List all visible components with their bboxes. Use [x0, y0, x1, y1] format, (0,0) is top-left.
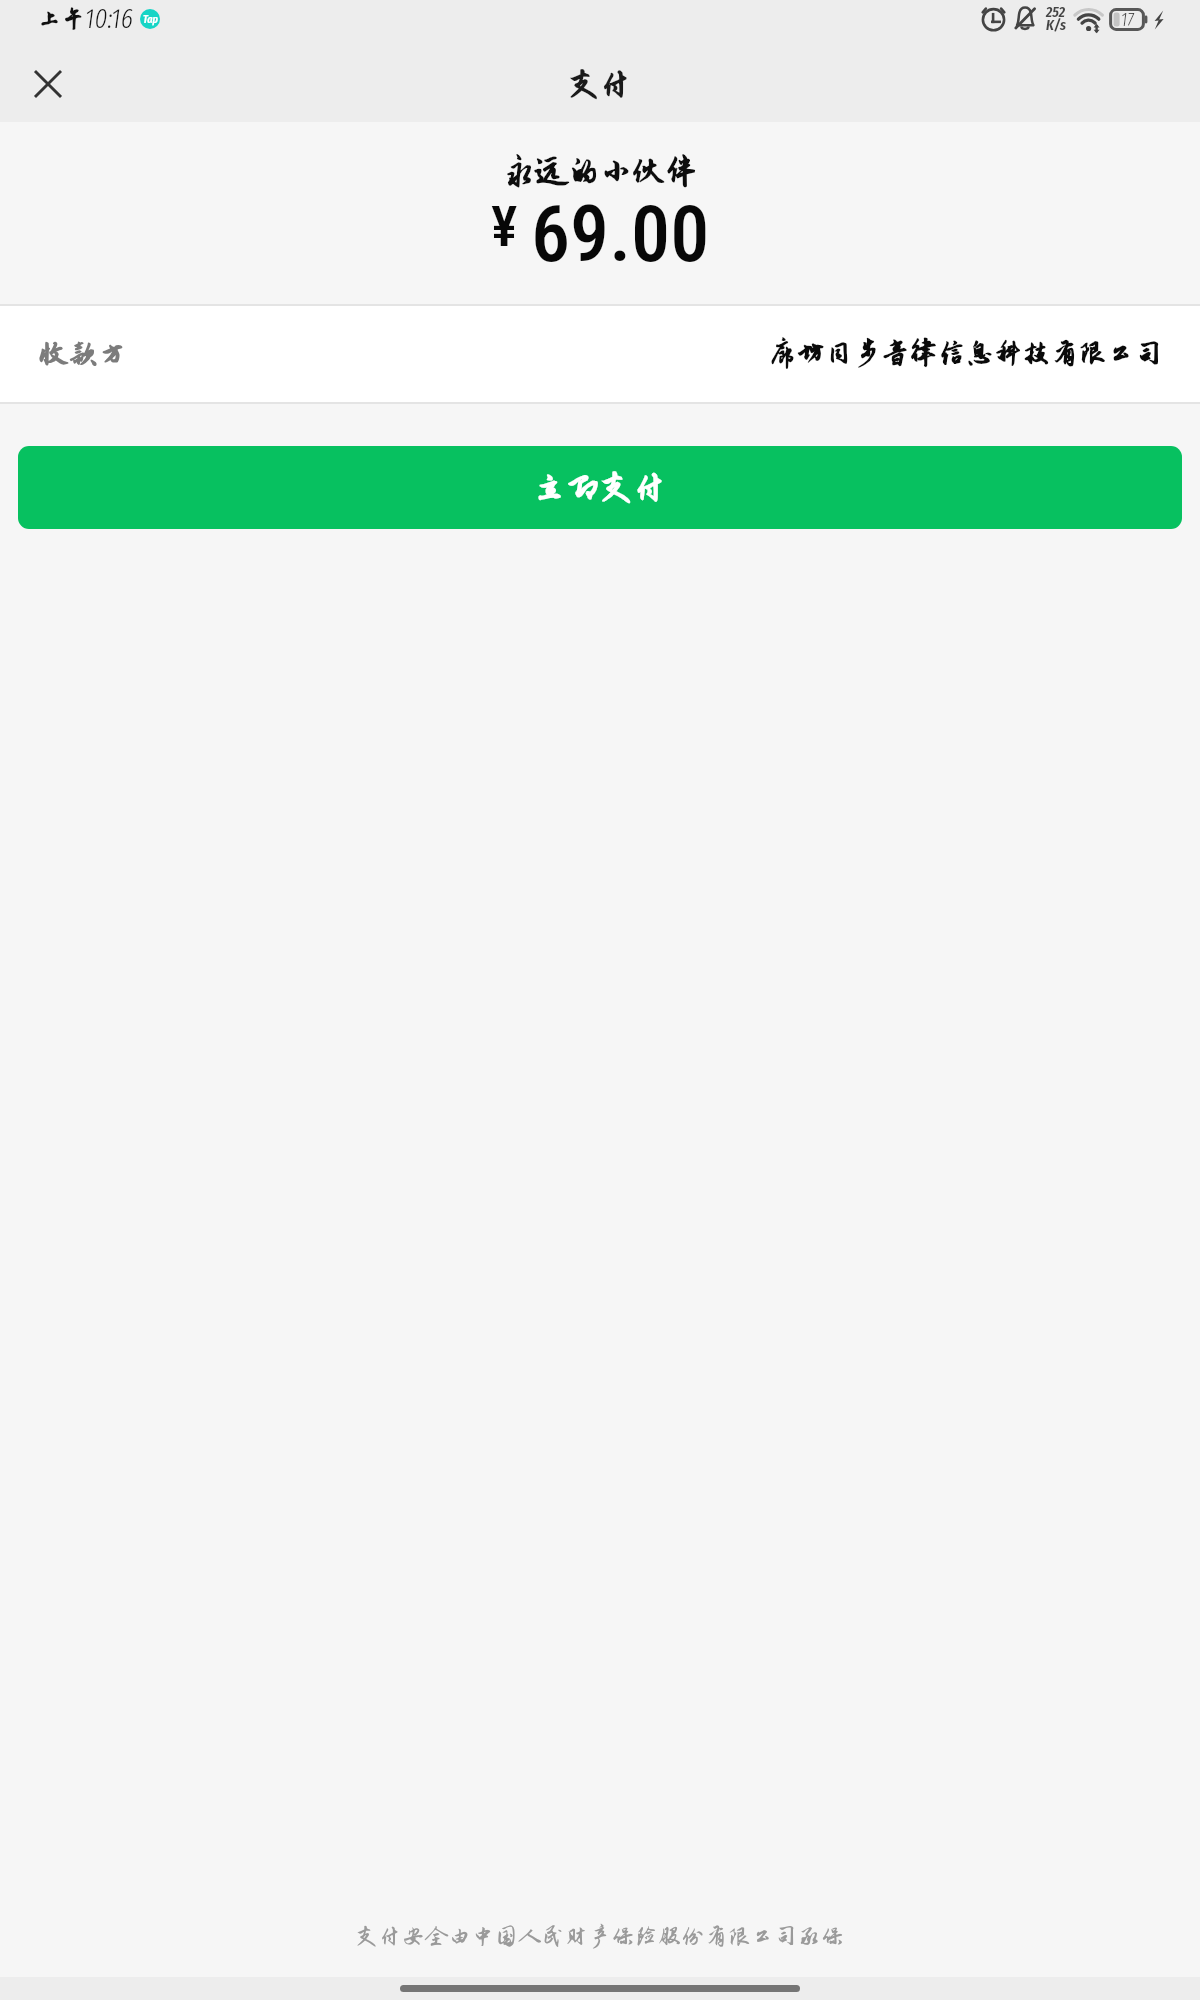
staticText: 17 — [1121, 9, 1134, 31]
button[interactable]: 收款方 — [0, 306, 1200, 402]
staticText: 永远的小伙伴 — [503, 153, 698, 189]
staticText: 252 — [1046, 3, 1066, 21]
staticText: Tap — [143, 13, 158, 26]
staticText: 立即支付 — [533, 469, 667, 506]
staticText: K/s — [1046, 16, 1066, 34]
staticText: 廊坊同步音律信息科技有限公司 — [769, 339, 1164, 369]
staticText: 支付安全由中国人民财产保险股份有限公司承保 — [0, 1924, 1200, 1949]
staticText: ¥ — [491, 194, 518, 260]
staticText: 支付 — [568, 67, 632, 102]
staticText: 10:16 — [85, 3, 133, 35]
button[interactable]: Close — [18, 54, 78, 114]
staticText: 69.00 — [531, 189, 710, 280]
button[interactable]: 立即支付 — [18, 446, 1182, 529]
staticText: 上午 — [38, 6, 85, 32]
staticText: 收款方 — [40, 339, 128, 370]
